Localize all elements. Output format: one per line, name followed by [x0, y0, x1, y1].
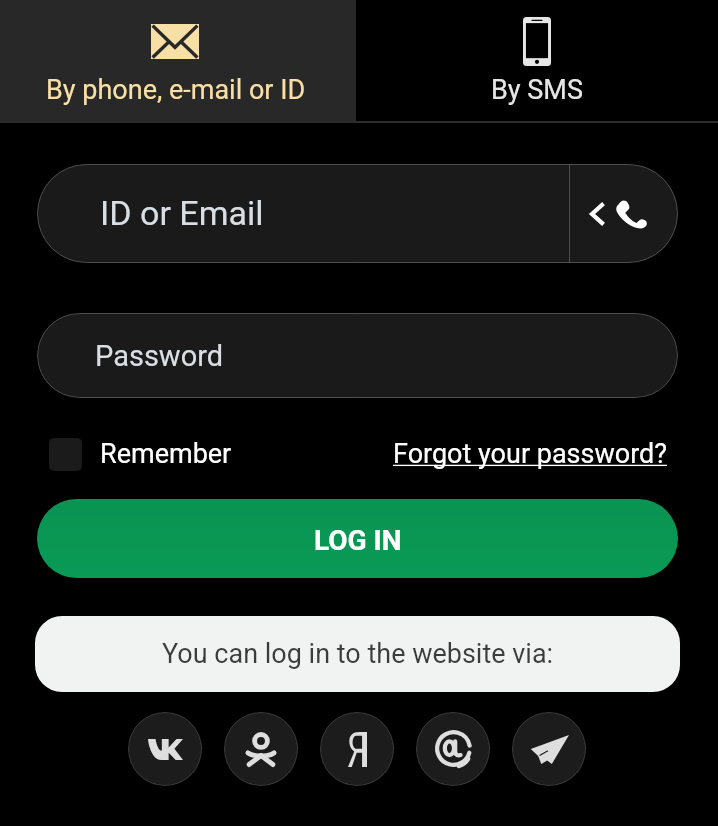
button[interactable]: Telegram	[512, 712, 586, 786]
button[interactable]: Mail.ru	[416, 712, 490, 786]
button[interactable]: Forgot your password?	[393, 430, 668, 478]
staticText: Password	[95, 339, 224, 373]
staticText: Remember	[100, 438, 232, 470]
button[interactable]: Switch to phone login	[570, 164, 678, 263]
staticText: By phone, e-mail or ID	[46, 74, 306, 106]
button[interactable]: Password	[37, 313, 678, 398]
button[interactable]: By phone, e-mail or ID	[0, 0, 356, 121]
staticText: ID or Email	[100, 193, 264, 233]
staticText: By SMS	[491, 74, 583, 106]
button[interactable]: Yandex	[320, 712, 394, 786]
button[interactable]: ID or Email	[37, 164, 569, 263]
button[interactable]: Odnoklassniki	[224, 712, 298, 786]
staticText: You can log in to the website via:	[162, 638, 554, 670]
button[interactable]: By SMS	[356, 0, 718, 121]
button[interactable]: Remember	[49, 430, 232, 478]
staticText: LOG IN	[314, 524, 402, 557]
button[interactable]: LOG IN	[37, 499, 678, 578]
button[interactable]: VK	[128, 712, 202, 786]
staticText: Forgot your password?	[393, 438, 668, 470]
